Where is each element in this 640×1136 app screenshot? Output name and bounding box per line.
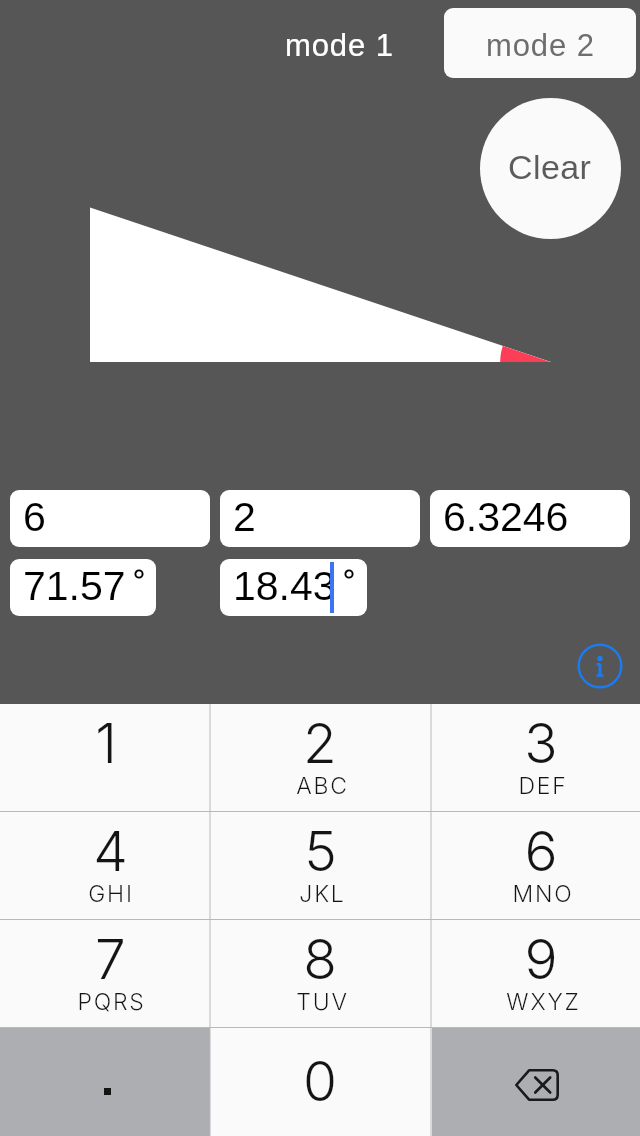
button[interactable] [211,1028,431,1136]
button[interactable] [0,920,210,1028]
button[interactable]: 6.3246 [430,490,630,547]
staticText: WXYZ [506,988,581,1016]
button[interactable]: Info [577,643,623,689]
button[interactable] [432,812,640,920]
staticText: 7 [95,926,126,993]
staticText: PQRS [77,988,146,1016]
button[interactable] [432,704,640,812]
button[interactable]: mode 1 [266,8,406,70]
staticText: 6 [524,818,558,885]
button[interactable] [0,1028,210,1136]
button[interactable] [0,704,210,812]
staticText: DEF [518,772,568,800]
button[interactable]: 2 [220,490,420,547]
staticText: 6 [23,494,46,540]
staticText: JKL [299,880,346,908]
button[interactable]: Delete [432,1028,640,1136]
button[interactable] [0,812,210,920]
button[interactable] [432,920,640,1028]
staticText: 18.43 [233,563,336,609]
button[interactable] [211,812,431,920]
staticText: 9 [524,926,558,993]
staticText: 3 [524,710,558,777]
staticText: Clear [508,148,592,186]
staticText: 2 [233,494,256,540]
staticText: 0 [303,1048,337,1115]
staticText: mode 2 [486,28,595,63]
button[interactable]: mode 2 [444,8,636,78]
staticText: GHI [88,880,134,908]
button[interactable]: 71.57 [10,559,156,616]
staticText: MNO [512,880,574,908]
staticText: 5 [304,818,337,885]
staticText: TUV [296,988,349,1016]
staticText: 4 [93,818,128,885]
staticText: 71.57 [23,563,126,609]
button[interactable] [211,920,431,1028]
staticText: 8 [303,926,337,993]
button[interactable] [211,704,431,812]
staticText: mode 1 [285,28,394,63]
staticText: 1 [95,710,117,777]
button[interactable]: 6 [10,490,210,547]
staticText: 2 [303,710,337,777]
button[interactable]: Clear [480,98,621,239]
staticText: 6.3246 [443,494,569,540]
staticText: ABC [296,772,349,800]
button[interactable]: 18.43 [220,559,367,616]
